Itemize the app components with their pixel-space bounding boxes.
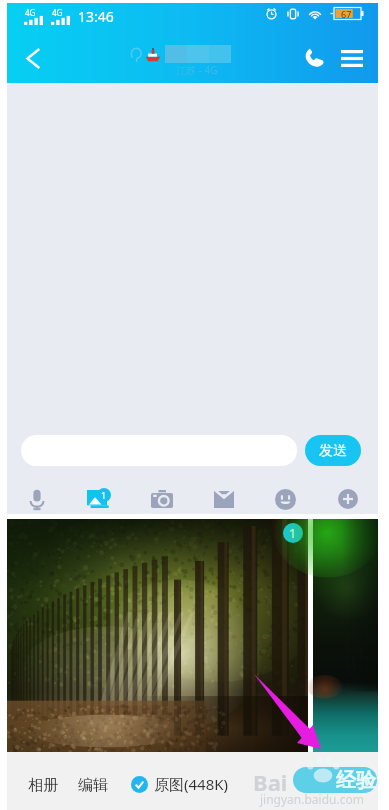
staticText: 4G <box>25 7 36 18</box>
staticText: 1 <box>101 489 107 501</box>
staticText: 67 <box>341 8 352 20</box>
staticText: 经验 <box>336 768 376 793</box>
button[interactable]: Envelope <box>205 480 243 518</box>
staticText: 1 <box>289 524 297 542</box>
staticText: 发送 <box>319 442 347 460</box>
staticText: jingyan.baidu.com <box>260 791 364 807</box>
button[interactable]: 相册 <box>28 776 58 795</box>
button[interactable]: 原图(448K) <box>131 774 229 794</box>
staticText: 13:46 <box>78 7 114 26</box>
button[interactable]: Menu <box>331 36 373 80</box>
button[interactable]: Gallery <box>80 480 118 518</box>
button[interactable] <box>21 435 297 466</box>
button[interactable]: Voice <box>18 480 56 518</box>
button[interactable]: 编辑 <box>78 776 108 795</box>
staticText: 江苏 - 4G <box>176 63 218 77</box>
button[interactable]: 发送 <box>305 435 361 466</box>
button[interactable]: Call <box>293 36 335 80</box>
staticText: 4G <box>52 7 63 18</box>
button[interactable]: Photo 1 <box>7 519 308 752</box>
button[interactable]: More <box>329 480 367 518</box>
button[interactable]: Back <box>11 35 55 81</box>
staticText: 原图(448K) <box>154 774 229 794</box>
button[interactable]: 江苏 - 4G <box>119 39 231 75</box>
button[interactable]: Photo 2 <box>313 519 378 752</box>
button[interactable]: Camera <box>143 480 181 518</box>
button[interactable]: Emoji <box>266 480 304 518</box>
staticText: Bai <box>253 767 288 797</box>
